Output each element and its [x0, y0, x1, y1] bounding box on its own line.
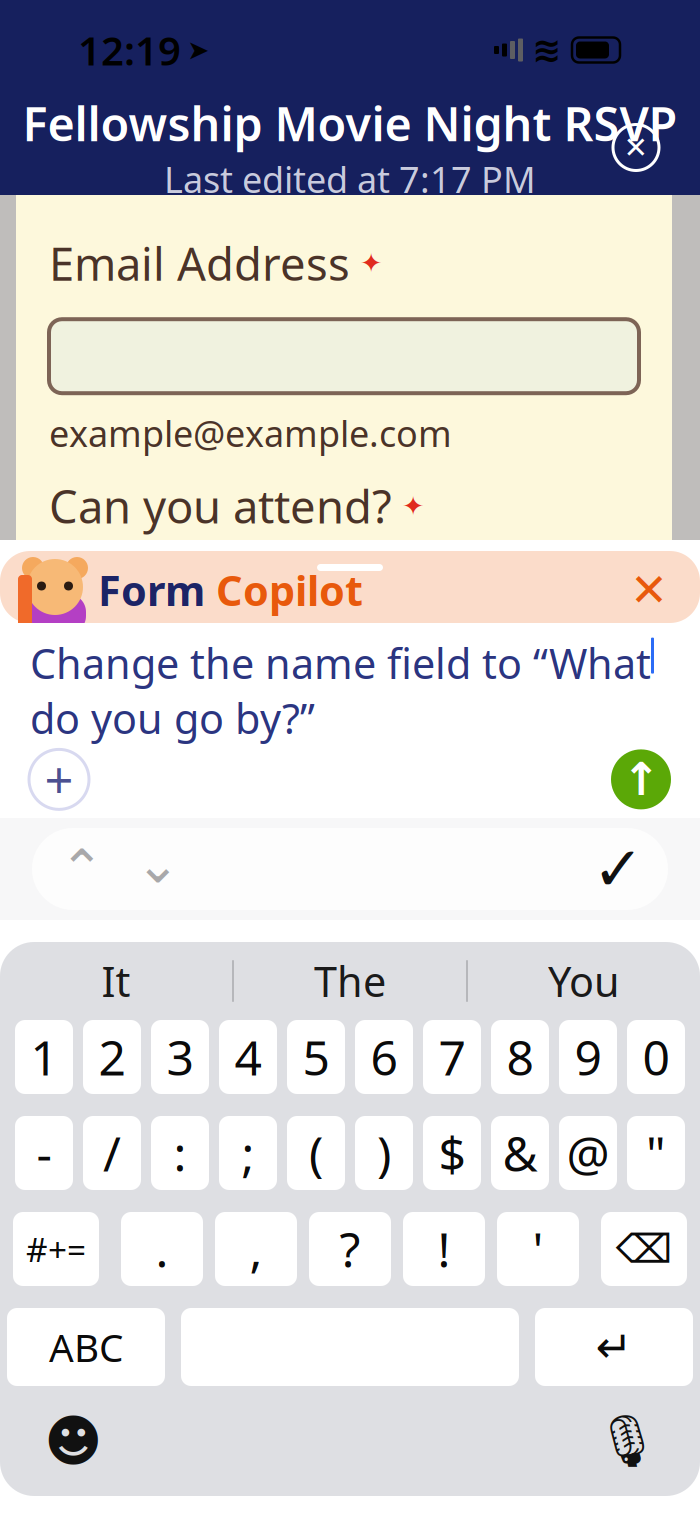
button[interactable]: It [0, 951, 232, 1011]
staticText: Copilot [216, 563, 363, 617]
staticText: & [502, 1121, 537, 1185]
staticText: 5 [302, 1025, 329, 1089]
button[interactable]: The [234, 951, 466, 1011]
staticText: It [101, 954, 130, 1008]
button[interactable]: 6 [355, 1020, 413, 1094]
button[interactable]: ABC [7, 1308, 165, 1386]
staticText: ( [309, 1121, 323, 1185]
staticText: ! [437, 1217, 450, 1281]
staticText: Change the name field to “What do you go… [30, 636, 651, 745]
button[interactable]: Emoji keyboard [34, 1402, 112, 1480]
button[interactable]: - [15, 1116, 73, 1190]
staticText: ) [377, 1121, 391, 1185]
staticText: 6 [370, 1025, 397, 1089]
staticText: ✕ [623, 131, 648, 164]
button[interactable]: ! [403, 1212, 485, 1286]
staticText: . [155, 1217, 168, 1281]
staticText: $ [438, 1121, 465, 1185]
staticText: ➤ [187, 35, 209, 65]
staticText: ✦ [402, 491, 424, 521]
staticText: 1 [30, 1025, 57, 1089]
button[interactable]: @ [559, 1116, 617, 1190]
staticText: : [173, 1121, 186, 1185]
button[interactable]: 5 [287, 1020, 345, 1094]
staticText: example@example.com [49, 409, 452, 457]
staticText: ✕ [630, 564, 668, 616]
staticText: ⌃ [59, 839, 104, 899]
button[interactable]: , [215, 1212, 297, 1286]
button[interactable]: ) [355, 1116, 413, 1190]
button[interactable]: Next field [120, 826, 196, 912]
button[interactable]: 9 [559, 1020, 617, 1094]
staticText: Fellowship Movie Night RSVP [22, 92, 677, 154]
staticText: ↑ [622, 754, 660, 805]
staticText: Last edited at 7:17 PM [164, 155, 536, 203]
button[interactable]: 2 [83, 1020, 141, 1094]
staticText: + [44, 746, 73, 813]
staticText: Can you attend? [49, 476, 392, 536]
button[interactable]: " [627, 1116, 685, 1190]
button[interactable]: 4 [219, 1020, 277, 1094]
staticText: 9 [574, 1025, 601, 1089]
button[interactable]: Previous field [44, 831, 120, 907]
button[interactable]: ? [309, 1212, 391, 1286]
button[interactable]: ( [287, 1116, 345, 1190]
button[interactable]: #+= [13, 1212, 99, 1286]
button[interactable]: 0 [627, 1020, 685, 1094]
button[interactable]: ' [497, 1212, 579, 1286]
button[interactable]: . [121, 1212, 203, 1286]
staticText: ' [532, 1217, 543, 1281]
button[interactable]: Add attachment [25, 745, 93, 813]
staticText: ✦ [360, 248, 382, 278]
button[interactable]: & [491, 1116, 549, 1190]
staticText: 0 [642, 1025, 669, 1089]
button[interactable]: 3 [151, 1020, 209, 1094]
staticText: - [36, 1121, 51, 1185]
button[interactable]: 8 [491, 1020, 549, 1094]
staticText: 4 [234, 1025, 261, 1089]
button[interactable]: $ [423, 1116, 481, 1190]
staticText: / [103, 1121, 121, 1185]
staticText: 8 [506, 1025, 533, 1089]
button[interactable]: 1 [15, 1020, 73, 1094]
button[interactable]: Close form [604, 115, 668, 179]
staticText: ☻ [44, 1409, 102, 1473]
button[interactable]: ; [219, 1116, 277, 1190]
button[interactable]: ⌫ [601, 1212, 687, 1286]
staticText: 12:19 [78, 23, 181, 76]
button[interactable]: You [468, 951, 700, 1011]
staticText: #+= [26, 1227, 86, 1271]
staticText: You [548, 954, 620, 1008]
button[interactable]: Done [580, 831, 656, 907]
staticText: 3 [166, 1025, 193, 1089]
button[interactable]: / [83, 1116, 141, 1190]
staticText: 2 [98, 1025, 125, 1089]
staticText: The [314, 954, 386, 1008]
button[interactable]: : [151, 1116, 209, 1190]
staticText: Form [98, 563, 216, 617]
staticText: Email Address [49, 233, 350, 293]
staticText: ✓ [592, 834, 643, 904]
staticText: ⌄ [135, 834, 180, 894]
staticText: " [646, 1121, 666, 1185]
staticText: 🎙 [595, 1412, 659, 1470]
staticText: ⌫ [615, 1226, 672, 1272]
staticText: ≋ [532, 30, 561, 70]
staticText: ; [241, 1121, 254, 1185]
staticText: , [249, 1217, 262, 1281]
staticText: ↵ [595, 1322, 632, 1372]
staticText: ABC [49, 1321, 123, 1373]
button[interactable]: Close Form Copilot [616, 557, 682, 623]
staticText: ? [339, 1217, 360, 1281]
button[interactable]: Send prompt [607, 745, 675, 813]
button[interactable]: 7 [423, 1020, 481, 1094]
button[interactable]: ↵ [535, 1308, 693, 1386]
button[interactable]: Dictation [588, 1402, 666, 1480]
staticText: 7 [438, 1025, 465, 1089]
staticText: @ [566, 1121, 609, 1185]
